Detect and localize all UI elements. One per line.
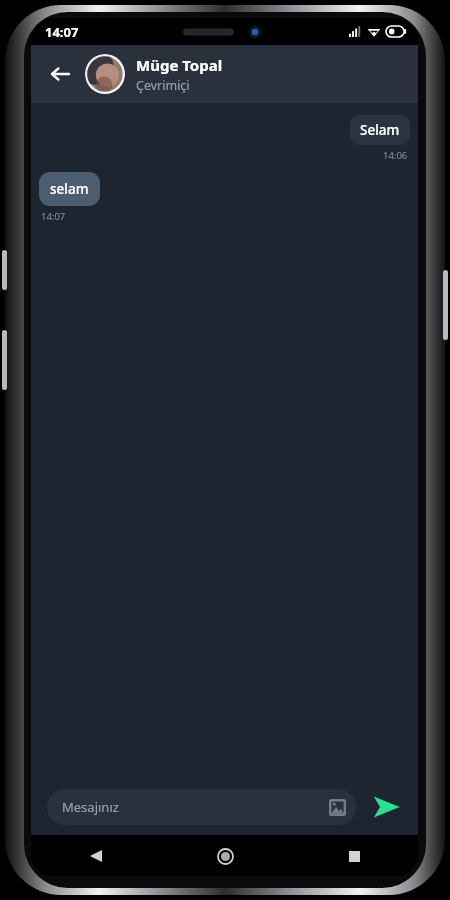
- staticText: Selam: [360, 121, 400, 139]
- button[interactable]: Recent apps: [337, 839, 371, 873]
- button[interactable]: selam: [39, 172, 100, 206]
- staticText: 14:06: [383, 149, 408, 162]
- button[interactable]: Home: [208, 839, 242, 873]
- button[interactable]: Back: [41, 55, 79, 93]
- button[interactable]: Selam: [350, 115, 410, 145]
- button[interactable]: Attach image: [326, 796, 348, 818]
- button[interactable]: Back: [79, 839, 113, 873]
- button[interactable]: Mesajınız: [47, 789, 356, 825]
- staticText: selam: [50, 180, 89, 198]
- button[interactable]: Send: [366, 787, 406, 827]
- button[interactable]: Profile photo: [85, 54, 125, 94]
- staticText: 14:07: [41, 210, 66, 223]
- staticText: 14:07: [45, 23, 79, 41]
- staticText: Müge Topal: [136, 55, 223, 75]
- staticText: Çevrimiçi: [136, 77, 190, 94]
- staticText: Mesajınız: [62, 798, 326, 816]
